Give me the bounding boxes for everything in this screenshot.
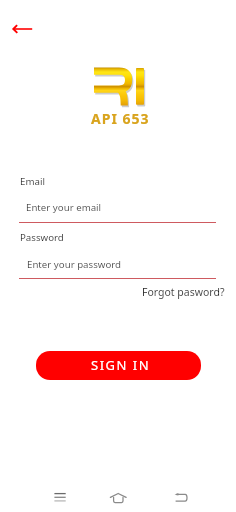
- staticText: SIGN IN: [91, 356, 151, 374]
- button[interactable]: Back: [5, 17, 41, 41]
- button[interactable]: Forgot pasword?: [142, 285, 225, 299]
- staticText: Enter your email: [26, 201, 102, 214]
- staticText: Forgot pasword?: [142, 285, 225, 299]
- button[interactable]: Back: [166, 483, 197, 512]
- button[interactable]: Home: [103, 483, 134, 512]
- button[interactable]: Recent apps: [44, 483, 75, 512]
- staticText: Password: [20, 231, 64, 244]
- staticText: API 653: [91, 109, 150, 128]
- staticText: Enter your password: [27, 258, 122, 271]
- button[interactable]: SIGN IN: [36, 351, 201, 380]
- staticText: Email: [20, 175, 45, 188]
